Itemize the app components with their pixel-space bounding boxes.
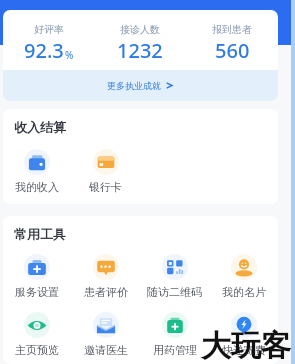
staticText: 邀请医生 [84,343,128,356]
staticText: 好评率 [34,23,64,36]
button[interactable]: 我的名片 [209,254,278,299]
staticText: 随访二维码 [147,285,202,299]
staticText: 92.3 [24,37,64,64]
button[interactable]: 服务设置 [3,254,71,299]
staticText: 用药管理 [153,343,197,356]
staticText: 服务设置 [15,285,59,299]
staticText: 接诊人数 [120,23,160,36]
button[interactable]: 邀请医生 [71,312,140,356]
button[interactable]: 更多执业成就 [3,70,278,101]
staticText: 1232 [117,37,163,64]
button[interactable]: 快递寄费 [209,312,278,356]
staticText: 我的名片 [222,285,266,299]
staticText: 大玩客 [201,327,291,364]
staticText: 560 [215,37,250,64]
staticText: % [65,48,74,62]
button[interactable]: 我的收入 [3,149,71,194]
staticText: 患者评价 [84,285,128,299]
staticText: 主页预览 [15,343,59,356]
staticText: 收入结算 [14,119,66,135]
button[interactable]: 患者评价 [71,254,140,299]
staticText: 更多执业成就 [107,80,161,91]
button[interactable]: 用药管理 [140,312,209,356]
staticText: 报到患者 [212,23,252,36]
button[interactable]: 随访二维码 [140,254,209,299]
staticText: 常用工具 [14,226,66,242]
staticText: 快递寄费 [222,343,266,356]
staticText: 我的收入 [15,180,59,194]
staticText: 银行卡 [89,180,122,194]
button[interactable]: 银行卡 [71,149,140,194]
button[interactable]: 主页预览 [3,312,71,356]
